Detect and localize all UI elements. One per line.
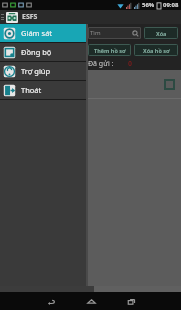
staticText: ESFS <box>22 12 38 22</box>
staticText: Đồng bộ <box>21 47 52 57</box>
button[interactable]: Tìm <box>88 27 141 39</box>
staticText: 09:08 <box>163 1 179 9</box>
button[interactable]: Đồng bộ <box>0 43 86 61</box>
button[interactable]: Xóa hồ sơ <box>134 44 178 56</box>
staticText: 0 <box>128 59 133 69</box>
button[interactable]: Giám sát <box>0 24 86 42</box>
button[interactable]: Trợ giúp <box>0 62 86 80</box>
button[interactable]: Recent apps <box>111 292 151 310</box>
staticText: 56% <box>142 1 155 9</box>
button[interactable]: App icon <box>6 12 18 23</box>
staticText: Thêm hồ sơ <box>94 47 126 54</box>
staticText: Đã gửi : <box>88 59 114 69</box>
staticText: Tìm <box>90 29 101 37</box>
button[interactable]: Open navigation drawer <box>0 10 5 24</box>
button[interactable]: Xóa <box>144 27 178 39</box>
button[interactable]: Thêm hồ sơ <box>88 44 131 56</box>
staticText: Thoát <box>21 85 42 95</box>
staticText: Trợ giúp <box>21 66 51 76</box>
staticText: Giám sát <box>21 28 53 38</box>
button[interactable]: Select all <box>164 79 175 90</box>
button[interactable]: Thoát <box>0 81 86 99</box>
button[interactable]: Home <box>71 292 111 310</box>
staticText: Xóa hồ sơ <box>143 47 170 54</box>
staticText: Xóa <box>156 30 167 37</box>
button[interactable]: Back <box>31 292 71 310</box>
